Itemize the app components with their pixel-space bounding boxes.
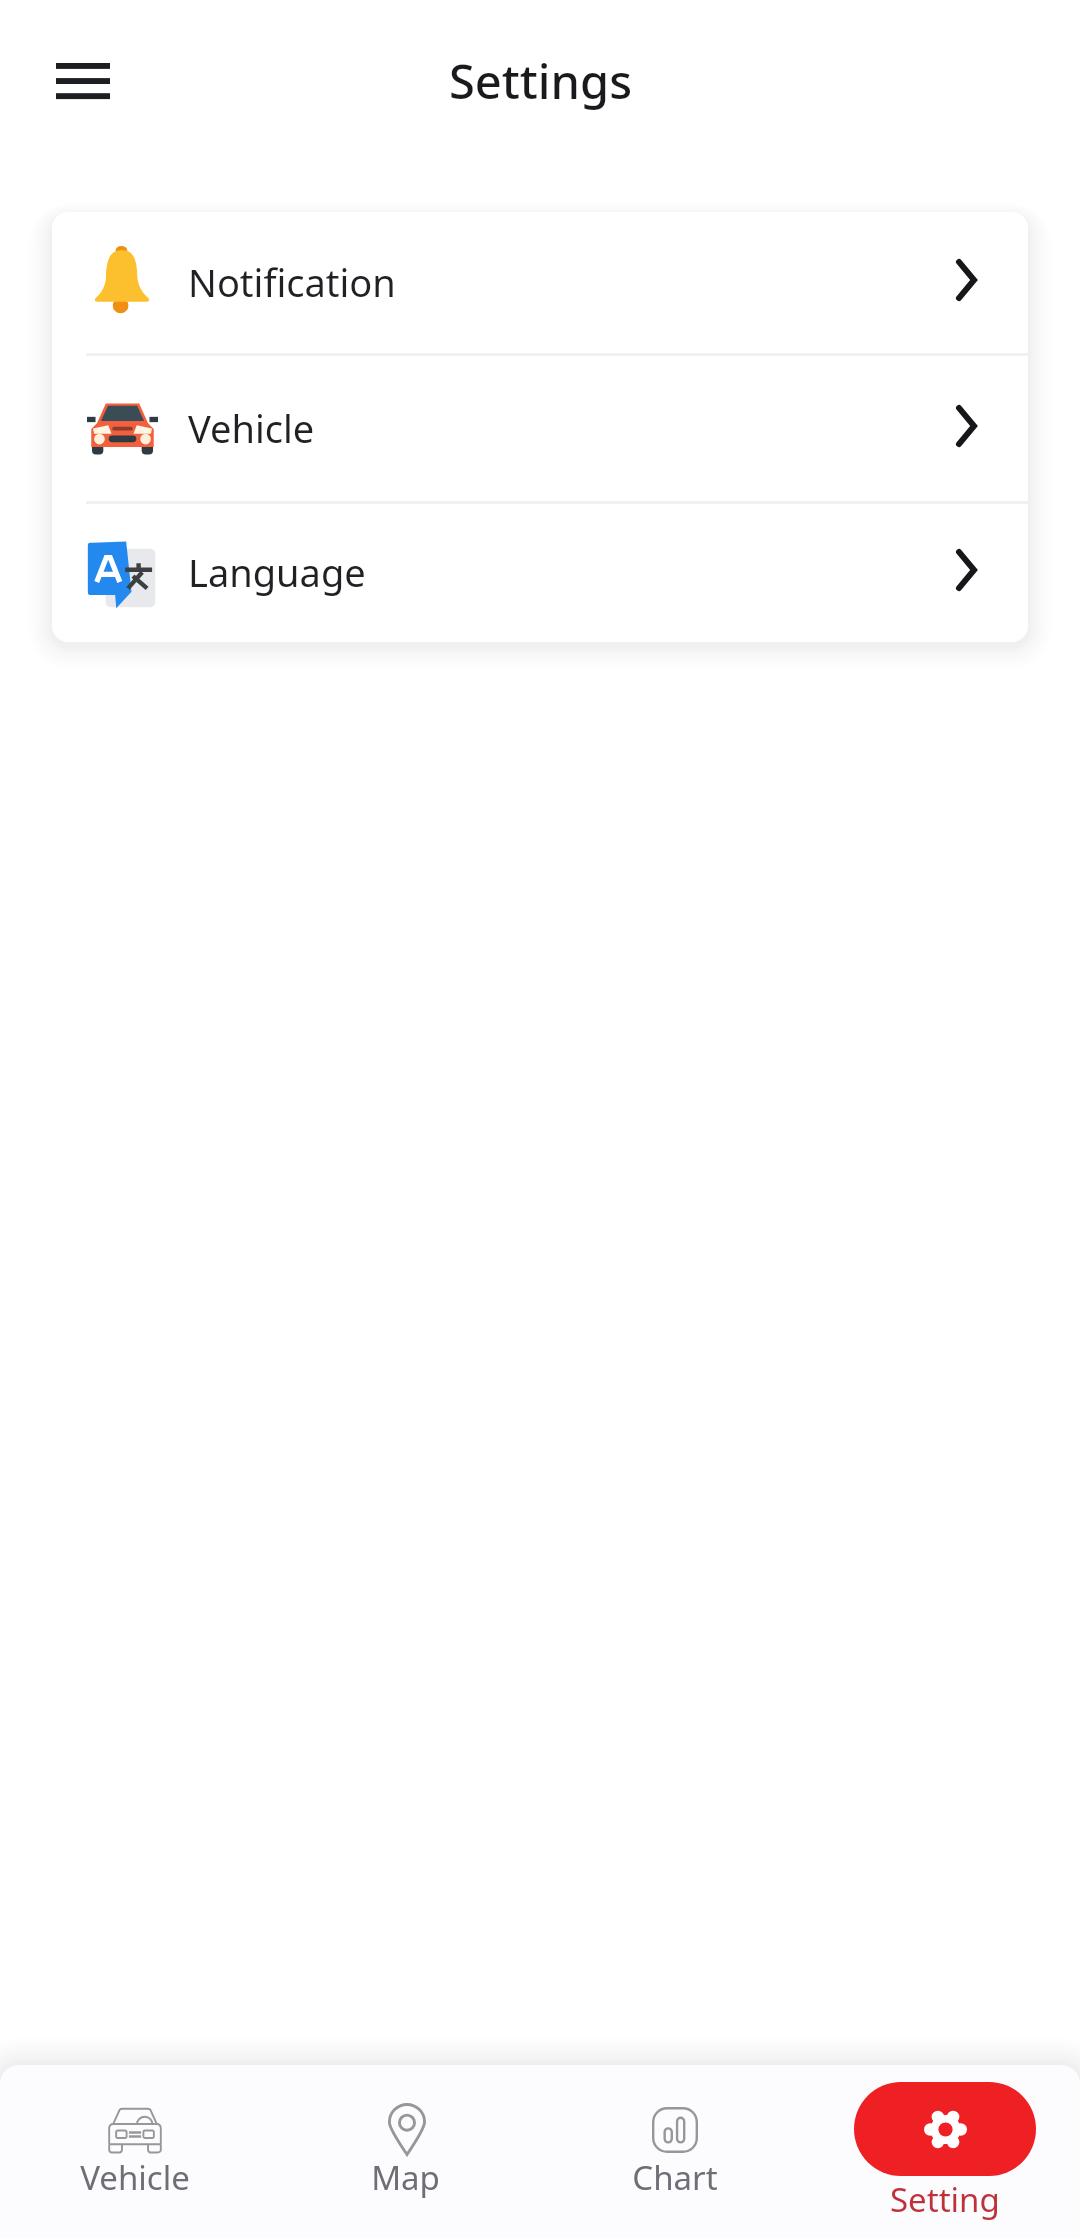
- button[interactable]: Vehicle: [52, 356, 1028, 501]
- button[interactable]: Chart: [540, 2065, 810, 2238]
- staticText: Language: [188, 546, 366, 598]
- staticText: Notification: [188, 256, 396, 308]
- button[interactable]: Vehicle: [0, 2065, 270, 2238]
- button[interactable]: Language: [52, 504, 1028, 642]
- staticText: Settings: [449, 49, 632, 113]
- staticText: Chart: [632, 2155, 718, 2200]
- button[interactable]: Map: [270, 2065, 540, 2238]
- button[interactable]: Notification: [52, 212, 1028, 353]
- staticText: Setting: [890, 2177, 1000, 2222]
- staticText: Vehicle: [80, 2155, 190, 2200]
- staticText: Map: [371, 2155, 440, 2200]
- button[interactable]: Setting: [810, 2065, 1080, 2238]
- button[interactable]: Menu: [39, 39, 127, 127]
- staticText: Vehicle: [188, 402, 315, 454]
